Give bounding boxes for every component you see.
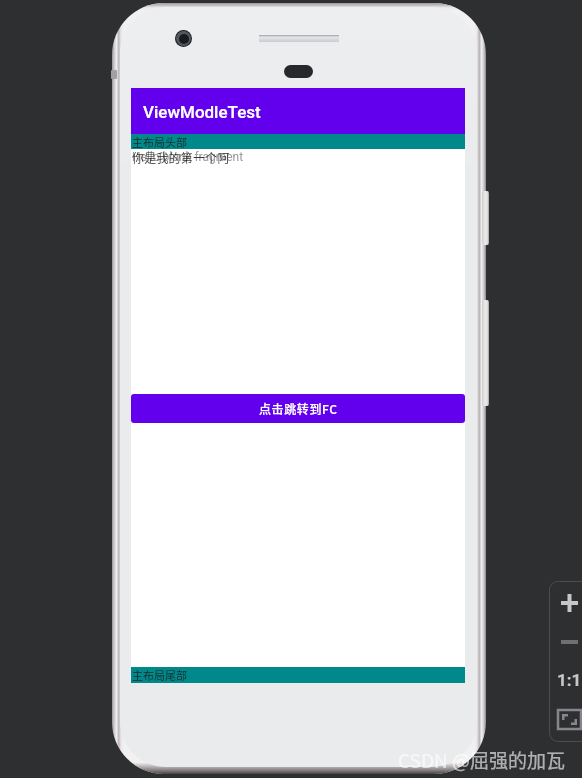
button[interactable]: Zoom out <box>551 628 582 656</box>
staticText: CSDN @屈强的加瓦 <box>398 746 565 774</box>
button[interactable]: 点击跳转到FC <box>131 394 465 423</box>
button[interactable]: 主布局尾部 <box>131 667 465 683</box>
staticText: Hello blank fragment <box>132 150 244 164</box>
button[interactable]: Zoom to actual size <box>551 665 582 695</box>
staticText: 你是我的第一个阿 <box>132 149 230 165</box>
staticText: 主布局头部 <box>132 134 187 149</box>
button[interactable]: Zoom in <box>551 587 582 619</box>
staticText: ViewModleTest <box>143 102 261 122</box>
staticText: 1:1 <box>557 670 582 690</box>
button[interactable]: 主布局头部 <box>131 134 465 149</box>
button[interactable]: Zoom to fit screen <box>551 703 582 735</box>
staticText: 点击跳转到FC <box>259 400 338 417</box>
staticText: 主布局尾部 <box>132 667 187 683</box>
button[interactable]: ViewModleTest <box>131 88 465 134</box>
